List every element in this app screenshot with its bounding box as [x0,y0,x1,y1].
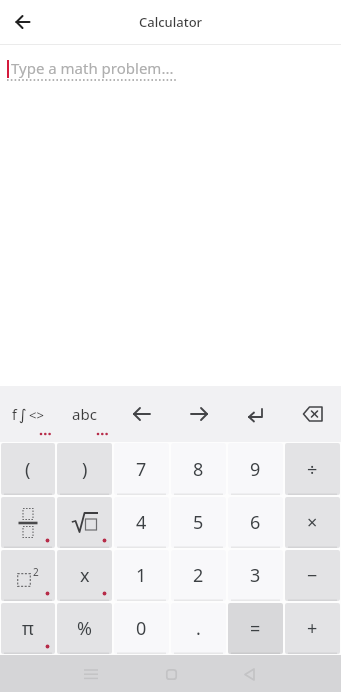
staticText: = [250,616,261,641]
button[interactable]: Type a math problem... [0,45,341,386]
staticText: 1 [136,563,147,588]
button[interactable]: + [285,603,340,654]
button[interactable] [57,497,112,548]
button[interactable]: × [285,497,340,548]
staticText: . [196,616,201,641]
button[interactable]: 1 [114,550,169,601]
button[interactable]: 4 [114,497,169,548]
button[interactable] [170,386,227,442]
staticText: ∫ [19,406,27,423]
button[interactable]: 2 [1,550,55,601]
button[interactable]: 9 [228,443,283,495]
staticText: 2 [33,565,39,579]
staticText: + [307,616,318,641]
button[interactable]: 0 [114,603,169,654]
button[interactable]: . [171,603,226,654]
button[interactable]: x [57,550,112,601]
button[interactable]: f [0,386,56,442]
button[interactable]: 7 [114,443,169,495]
staticText: 4 [136,510,147,535]
staticText: π [22,616,34,641]
staticText: × [307,510,318,535]
staticText: 7 [136,457,147,482]
button[interactable]: π [1,603,55,654]
staticText: 0 [136,616,147,641]
staticText: Calculator [139,13,203,31]
button[interactable]: % [57,603,112,654]
button[interactable]: 8 [171,443,226,495]
staticText: ÷ [307,457,318,482]
button[interactable]: ÷ [285,443,340,495]
staticText: x [80,563,90,588]
button[interactable]: − [285,550,340,601]
staticText: ) [82,457,88,482]
button[interactable] [156,659,186,689]
button[interactable]: 2 [171,550,226,601]
staticText: abc [72,404,97,424]
button[interactable] [7,6,39,38]
staticText: 9 [250,457,261,482]
staticText: ( [25,457,31,482]
button[interactable] [76,659,106,689]
button[interactable] [234,659,264,689]
button[interactable] [284,386,341,442]
staticText: 8 [193,457,204,482]
staticText: % [77,616,92,641]
staticText: − [307,563,318,588]
staticText: 3 [250,563,261,588]
button[interactable]: 5 [171,497,226,548]
staticText: 2 [193,563,204,588]
button[interactable]: ( [1,443,55,495]
button[interactable]: ) [57,443,112,495]
button[interactable]: 6 [228,497,283,548]
button[interactable] [113,386,170,442]
staticText: 5 [193,510,204,535]
staticText: 6 [250,510,261,535]
button[interactable] [227,386,284,442]
staticText: <> [29,406,44,424]
button[interactable] [1,497,55,548]
button[interactable]: = [228,603,283,654]
button[interactable]: 3 [228,550,283,601]
staticText: Type a math problem... [11,58,174,78]
button[interactable]: abc [56,386,113,442]
staticText: f [12,405,17,424]
